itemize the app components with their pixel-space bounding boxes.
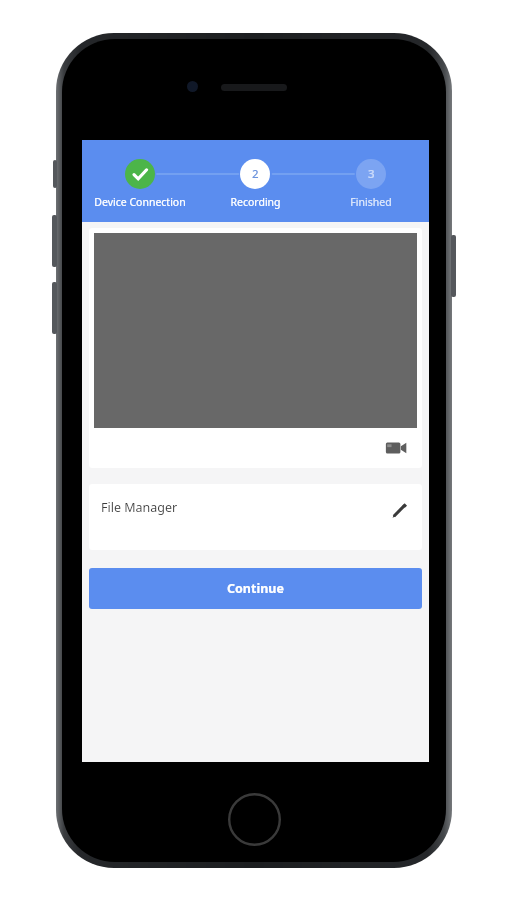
button[interactable]: Device Connection <box>82 140 197 222</box>
button[interactable]: Edit <box>388 499 410 521</box>
staticText: Continue <box>227 580 284 597</box>
staticText: Recording <box>230 195 281 209</box>
button[interactable]: Record video <box>89 228 422 468</box>
staticText: 2 <box>252 166 259 182</box>
button[interactable]: Record video <box>381 433 411 463</box>
staticText: 3 <box>368 166 375 182</box>
staticText: File Manager <box>101 499 178 516</box>
button[interactable]: 3 <box>313 140 429 222</box>
staticText: Device Connection <box>94 195 186 209</box>
button[interactable]: File Manager <box>89 484 422 550</box>
staticText: Finished <box>350 195 392 209</box>
button[interactable]: 2 <box>197 140 313 222</box>
button[interactable]: Continue <box>89 568 422 609</box>
